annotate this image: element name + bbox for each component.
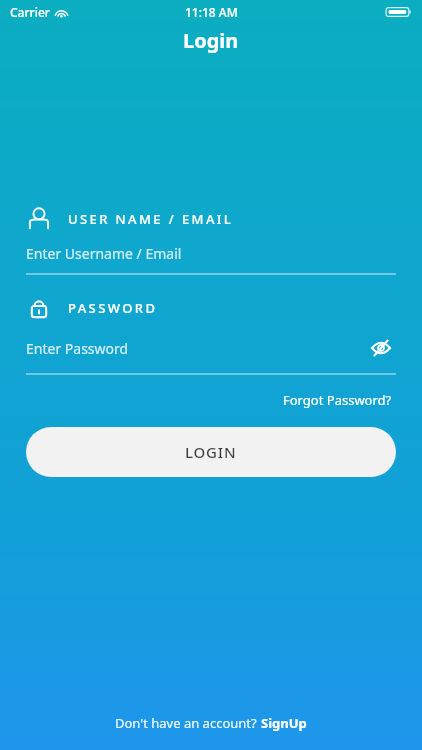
staticText: Enter Username / Email bbox=[26, 244, 182, 263]
button[interactable]: Don't have an account? bbox=[0, 714, 422, 750]
staticText: Don't have an account? bbox=[115, 714, 261, 732]
button[interactable]: Show password bbox=[366, 333, 396, 363]
staticText: Enter Password bbox=[26, 339, 129, 358]
staticText: SignUp bbox=[261, 714, 307, 732]
button[interactable]: LOGIN bbox=[26, 427, 396, 477]
button[interactable]: PASSWORD bbox=[0, 293, 422, 375]
button[interactable]: USER NAME / EMAIL bbox=[0, 204, 422, 275]
staticText: PASSWORD bbox=[68, 299, 158, 317]
staticText: Login bbox=[183, 27, 239, 54]
staticText: LOGIN bbox=[185, 442, 237, 462]
staticText: 11:18 AM bbox=[185, 4, 238, 20]
staticText: Carrier bbox=[10, 4, 50, 20]
staticText: USER NAME / EMAIL bbox=[68, 210, 234, 228]
button[interactable]: Forgot Password? bbox=[279, 387, 396, 413]
